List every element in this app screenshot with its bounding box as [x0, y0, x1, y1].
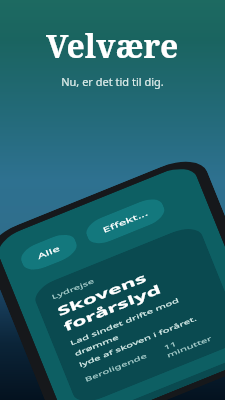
staticText: Lydrejse: [50, 276, 95, 301]
staticText: Skovens forårslyd: [55, 249, 202, 334]
button[interactable]: Alle: [17, 230, 80, 275]
button[interactable]: Effekt...: [83, 194, 168, 248]
staticText: Lad sindet drifte mod drømme lyde af sko…: [69, 285, 216, 369]
staticText: Alle: [36, 243, 62, 261]
button[interactable]: Sindsro: [83, 352, 225, 400]
staticText: Nu, er det tid til dig.: [61, 74, 164, 89]
staticText: Velvære: [46, 24, 179, 68]
staticText: Beroligende: [84, 351, 148, 384]
staticText: Effekt...: [101, 208, 150, 235]
button[interactable]: Lydrejse: [31, 222, 225, 400]
staticText: 11 minutter: [162, 321, 225, 359]
